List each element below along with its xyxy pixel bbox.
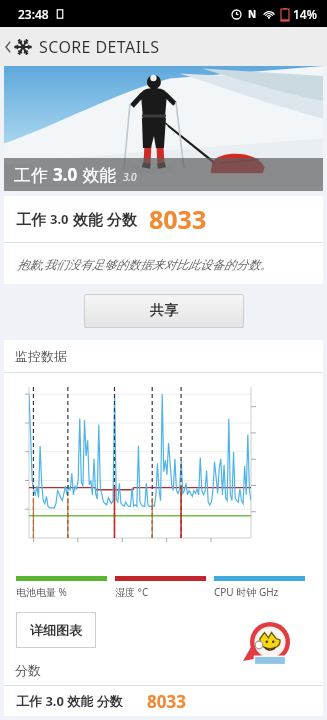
staticText: 8033 [149, 202, 207, 236]
button[interactable]: 详细图表 [16, 612, 96, 648]
staticText: 详细图表 [30, 622, 82, 638]
staticText: SCORE DETAILS [39, 36, 160, 58]
staticText: 3.0 [53, 163, 78, 186]
staticText: 湿度 °C [115, 585, 149, 599]
staticText: 8033 [147, 690, 186, 713]
staticText: 3.0 [123, 170, 137, 184]
staticText: 14% [293, 6, 317, 22]
staticText: 工作 [16, 209, 50, 229]
staticText: 效能 [78, 163, 117, 186]
staticText: 共享 [150, 302, 178, 320]
staticText: 电池电量 % [16, 585, 67, 599]
staticText: 工作 3.0 效能 分数 [16, 692, 123, 710]
staticText: 抱歉,我们没有足够的数据来对比此设备的分数。 [17, 256, 273, 272]
staticText: N [248, 7, 257, 21]
staticText: CPU 时钟 GHz [214, 585, 279, 599]
staticText: 3.0 [50, 210, 69, 228]
button[interactable]: Back to score details [0, 27, 327, 66]
button[interactable]: 工作 [4, 66, 323, 191]
staticText: 分数 [15, 662, 41, 678]
staticText: 工作 [14, 163, 53, 186]
staticText: 监控数据 [15, 348, 67, 364]
staticText: 23:48 [18, 6, 49, 22]
staticText: 效能 分数 [69, 209, 137, 229]
button[interactable]: 共享 [84, 294, 244, 328]
